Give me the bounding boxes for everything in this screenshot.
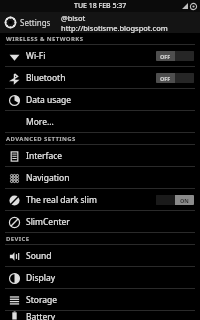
button[interactable]: Battery [0,311,200,320]
button[interactable]: OFF [156,73,194,83]
staticText: Settings [20,17,51,28]
staticText: SlimCenter [26,216,70,228]
button[interactable]: OFF [156,51,194,61]
staticText: Display [26,272,55,284]
button[interactable]: Wi-Fi [0,45,200,66]
staticText: Battery [26,311,56,320]
button[interactable]: More... [0,111,200,132]
staticText: More... [26,116,54,128]
staticText: Interface [26,150,63,162]
staticText: The real dark slim [26,194,97,206]
staticText: http://bisotisme.blogspot.com [61,23,168,33]
staticText: Wi-Fi [26,50,46,62]
staticText: ADVANCED SETTINGS [6,135,76,143]
staticText: ON [180,197,189,204]
button[interactable]: The real dark slim [0,189,200,210]
staticText: Storage [26,294,58,306]
staticText: OFF [160,53,171,60]
button[interactable]: Navigation [0,167,200,188]
button[interactable]: Bluetooth [0,67,200,88]
staticText: OFF [160,75,171,82]
staticText: TUE 18 FEB 5:37 [74,1,127,11]
button[interactable]: ON [156,195,194,205]
staticText: Bluetooth [26,72,66,84]
button[interactable]: Interface [0,145,200,166]
staticText: Data usage [26,94,72,106]
staticText: @bisot [61,13,86,23]
staticText: DEVICE [6,235,30,243]
button[interactable]: Display [0,267,200,288]
button[interactable]: Settings [0,12,200,33]
button[interactable]: Sound [0,245,200,266]
button[interactable]: SlimCenter [0,211,200,232]
button[interactable]: Storage [0,289,200,310]
button[interactable]: Data usage [0,89,200,110]
staticText: Navigation [26,172,70,184]
staticText: WIRELESS & NETWORKS [6,35,84,43]
staticText: Sound [26,250,52,262]
